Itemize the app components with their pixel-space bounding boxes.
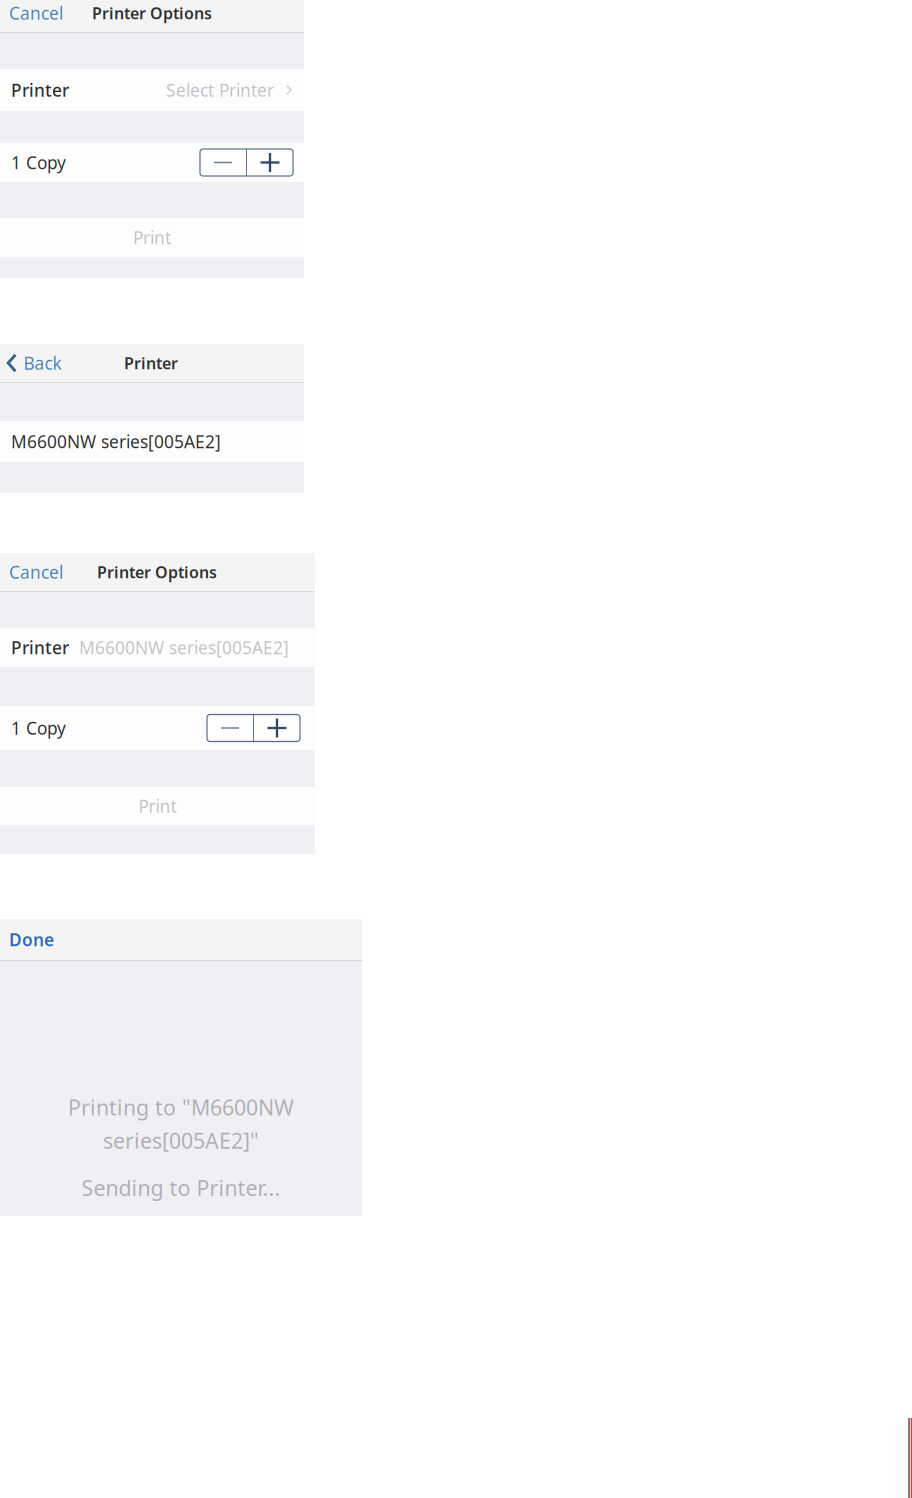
staticText: Back <box>24 351 62 374</box>
button[interactable]: Printer <box>0 628 315 667</box>
button[interactable]: Done <box>0 921 65 957</box>
staticText: M6600NW series[005AE2] <box>79 636 289 659</box>
staticText: 1 Copy <box>11 716 66 739</box>
staticText: Sending to Printer... <box>81 1174 280 1202</box>
staticText: Printer <box>11 636 69 659</box>
staticText: series[005AE2]" <box>103 1126 259 1155</box>
staticText: Select Printer <box>166 78 274 101</box>
staticText: Done <box>9 928 54 951</box>
staticText: Printer Options <box>92 2 212 24</box>
staticText: Cancel <box>9 1 63 24</box>
staticText: Print <box>138 794 176 817</box>
staticText: Print <box>133 226 171 249</box>
button[interactable]: M6600NW series[005AE2] <box>0 421 304 462</box>
button[interactable]: Increase copies <box>247 149 293 176</box>
button[interactable]: Increase copies <box>254 714 300 741</box>
staticText: 1 Copy <box>11 151 66 174</box>
staticText: Printer Options <box>97 561 217 583</box>
button[interactable]: Cancel <box>0 0 72 29</box>
staticText: Printer <box>124 352 178 374</box>
staticText: Printing to "M6600NW <box>68 1093 294 1121</box>
button[interactable]: Printer <box>0 69 304 111</box>
button[interactable]: Cancel <box>0 553 72 591</box>
button[interactable]: Decrease copies <box>207 714 253 741</box>
button[interactable]: Decrease copies <box>200 149 246 176</box>
button[interactable]: Back <box>0 344 68 382</box>
button[interactable]: Print <box>0 218 304 257</box>
staticText: M6600NW series[005AE2] <box>11 430 221 453</box>
staticText: Printer <box>11 78 69 101</box>
button[interactable]: Print <box>0 787 315 825</box>
staticText: Cancel <box>9 560 63 583</box>
